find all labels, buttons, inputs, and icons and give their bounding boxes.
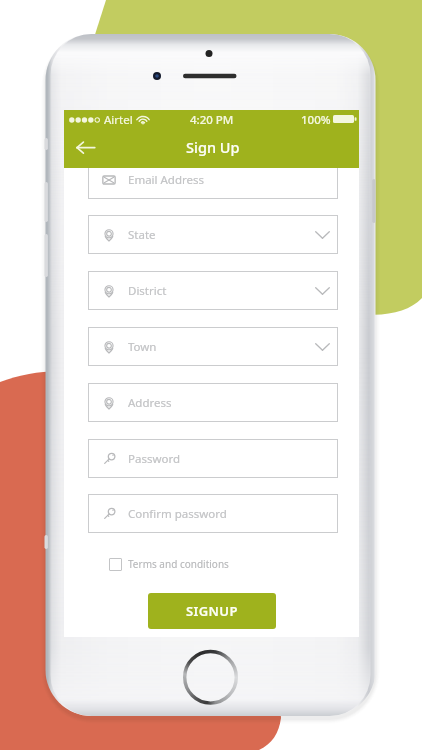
button[interactable]: Address bbox=[88, 383, 338, 422]
staticText: 4:20 PM bbox=[190, 112, 234, 128]
staticText: State bbox=[128, 227, 156, 243]
staticText: Sign Up bbox=[186, 137, 240, 157]
staticText: Confirm password bbox=[128, 506, 227, 522]
button[interactable]: District bbox=[88, 271, 338, 310]
staticText: Town bbox=[128, 339, 157, 355]
staticText: Email Address bbox=[128, 172, 205, 188]
button[interactable]: State bbox=[88, 215, 338, 254]
staticText: Terms and conditions bbox=[128, 557, 229, 571]
button[interactable]: Confirm password bbox=[88, 494, 338, 533]
staticText: SIGNUP bbox=[186, 602, 238, 620]
button[interactable]: Terms and conditions bbox=[107, 554, 221, 574]
staticText: District bbox=[128, 283, 167, 299]
button[interactable]: Back bbox=[65, 131, 101, 167]
staticText: Password bbox=[128, 451, 181, 467]
button[interactable]: Password bbox=[88, 439, 338, 478]
button[interactable]: Email Address bbox=[88, 160, 338, 199]
button[interactable]: Town bbox=[88, 327, 338, 366]
staticText: Address bbox=[128, 395, 172, 411]
staticText: Airtel bbox=[104, 112, 133, 128]
button[interactable]: SIGNUP bbox=[148, 593, 276, 629]
staticText: 100% bbox=[301, 112, 331, 128]
